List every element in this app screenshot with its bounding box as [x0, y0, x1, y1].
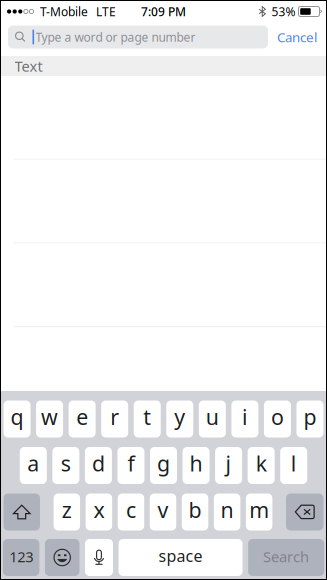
staticText: 7:09 PM	[141, 3, 186, 19]
staticText: u	[206, 403, 219, 431]
staticText: m	[249, 496, 269, 524]
button[interactable]: m	[246, 493, 272, 530]
button[interactable]: w	[36, 400, 63, 437]
staticText: y	[174, 403, 185, 431]
staticText: l	[291, 449, 297, 477]
button[interactable]: a	[20, 447, 47, 484]
staticText: 123	[9, 547, 33, 566]
button[interactable]: Emoji	[45, 539, 79, 576]
button[interactable]: space	[118, 539, 242, 576]
button[interactable]: z	[54, 493, 80, 530]
button[interactable]: j	[215, 447, 242, 484]
staticText: x	[93, 496, 104, 524]
button[interactable]: r	[101, 400, 128, 437]
staticText: v	[157, 496, 168, 524]
button[interactable]: s	[52, 447, 79, 484]
staticText: g	[157, 449, 170, 477]
staticText: z	[62, 496, 72, 524]
staticText: a	[27, 449, 39, 477]
button[interactable]: 123	[3, 539, 39, 576]
button[interactable]: Cancel	[272, 22, 322, 52]
button[interactable]: l	[280, 447, 307, 484]
button[interactable]: k	[248, 447, 275, 484]
staticText: Cancel	[277, 28, 317, 46]
staticText: n	[221, 496, 234, 524]
button[interactable]: p	[296, 400, 323, 437]
staticText: q	[10, 403, 23, 431]
button[interactable]: v	[150, 493, 176, 530]
button[interactable]: i	[231, 400, 258, 437]
button[interactable]: e	[69, 400, 96, 437]
staticText: c	[126, 496, 136, 524]
button[interactable]: Delete	[286, 493, 323, 530]
button[interactable]: Search	[248, 539, 324, 576]
staticText: p	[303, 403, 316, 431]
staticText: b	[188, 496, 201, 524]
button[interactable]: Shift	[3, 493, 40, 530]
staticText: space	[159, 545, 203, 566]
staticText: i	[242, 403, 248, 431]
staticText: T-Mobile	[40, 3, 88, 19]
staticText: 53%	[271, 3, 295, 19]
staticText: t	[143, 403, 151, 431]
staticText: h	[190, 449, 203, 477]
staticText: f	[127, 449, 134, 477]
staticText: o	[271, 403, 284, 431]
button[interactable]: c	[118, 493, 144, 530]
button[interactable]: x	[86, 493, 112, 530]
staticText: s	[61, 449, 71, 477]
staticText: LTE	[96, 3, 116, 19]
button[interactable]: g	[150, 447, 177, 484]
button[interactable]: y	[166, 400, 193, 437]
button[interactable]: u	[199, 400, 226, 437]
staticText: Text	[14, 56, 42, 76]
staticText: d	[92, 449, 105, 477]
button[interactable]: d	[85, 447, 112, 484]
staticText: k	[256, 449, 267, 477]
button[interactable]: t	[134, 400, 161, 437]
button[interactable]: n	[214, 493, 240, 530]
staticText: Type a word or page number	[36, 29, 196, 45]
button[interactable]: Dictate	[85, 539, 113, 576]
button[interactable]: b	[182, 493, 208, 530]
staticText: j	[226, 449, 232, 477]
button[interactable]: h	[183, 447, 210, 484]
staticText: w	[41, 403, 58, 431]
button[interactable]: o	[264, 400, 291, 437]
button[interactable]: f	[117, 447, 144, 484]
button[interactable]: q	[3, 400, 30, 437]
staticText: e	[76, 403, 88, 431]
staticText: Search	[263, 547, 309, 566]
staticText: r	[110, 403, 119, 431]
